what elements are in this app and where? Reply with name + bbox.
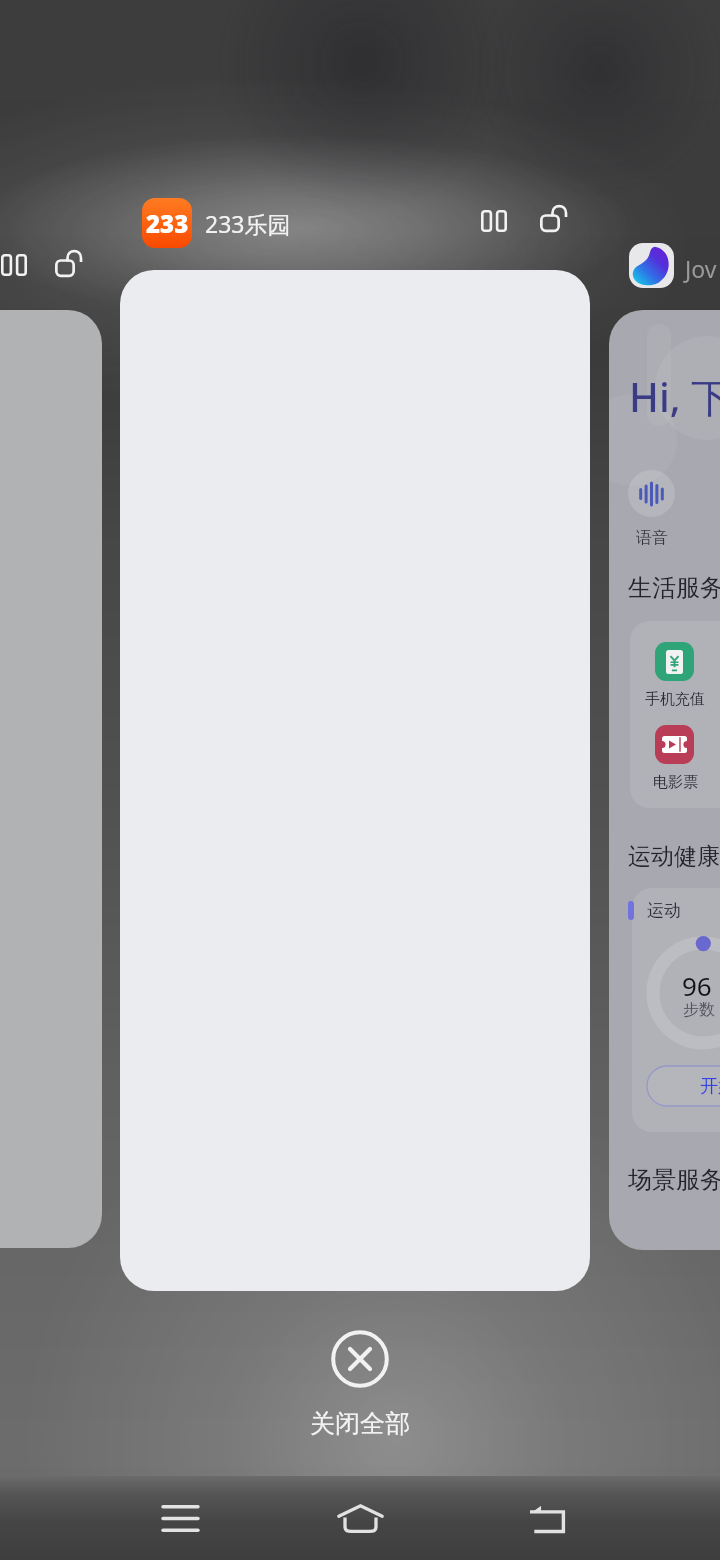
button[interactable]: 关闭全部 xyxy=(310,1330,410,1439)
button[interactable]: 开始 xyxy=(647,1066,720,1106)
button[interactable]: Home xyxy=(280,1476,440,1560)
button[interactable] xyxy=(655,642,694,681)
staticText: 运动 xyxy=(647,900,681,921)
button[interactable] xyxy=(628,470,675,517)
button[interactable]: Recent apps xyxy=(100,1476,261,1560)
button[interactable]: Lock app xyxy=(528,194,578,244)
staticText: 手机充值 xyxy=(645,690,705,709)
staticText: 开始 xyxy=(700,1075,720,1098)
staticText: 233 xyxy=(146,207,189,240)
button[interactable]: Hi, 下 xyxy=(609,310,720,1250)
button[interactable]: Back xyxy=(469,1476,629,1560)
button[interactable]: Jov xyxy=(685,253,717,284)
staticText: 场景服务 xyxy=(628,1165,720,1195)
staticText: 语音 xyxy=(636,528,668,548)
staticText: 电影票 xyxy=(653,773,698,792)
staticText: 关闭全部 xyxy=(310,1408,410,1439)
button[interactable]: Split screen xyxy=(469,196,519,246)
button[interactable] xyxy=(629,243,674,288)
staticText: 运动健康 xyxy=(628,842,720,871)
button[interactable] xyxy=(0,310,102,1248)
staticText: 生活服务 xyxy=(628,573,720,603)
button[interactable]: 233乐园 xyxy=(205,208,291,239)
staticText: Hi, 下 xyxy=(629,369,720,424)
button[interactable] xyxy=(120,270,590,1291)
button[interactable]: Lock app xyxy=(43,239,93,289)
staticText: 96 xyxy=(682,968,712,1003)
staticText: 233乐园 xyxy=(205,208,291,239)
button[interactable]: Split screen xyxy=(0,240,39,290)
button[interactable]: 233 xyxy=(142,198,192,248)
button[interactable] xyxy=(655,725,694,764)
staticText: 步数 xyxy=(683,1000,715,1020)
